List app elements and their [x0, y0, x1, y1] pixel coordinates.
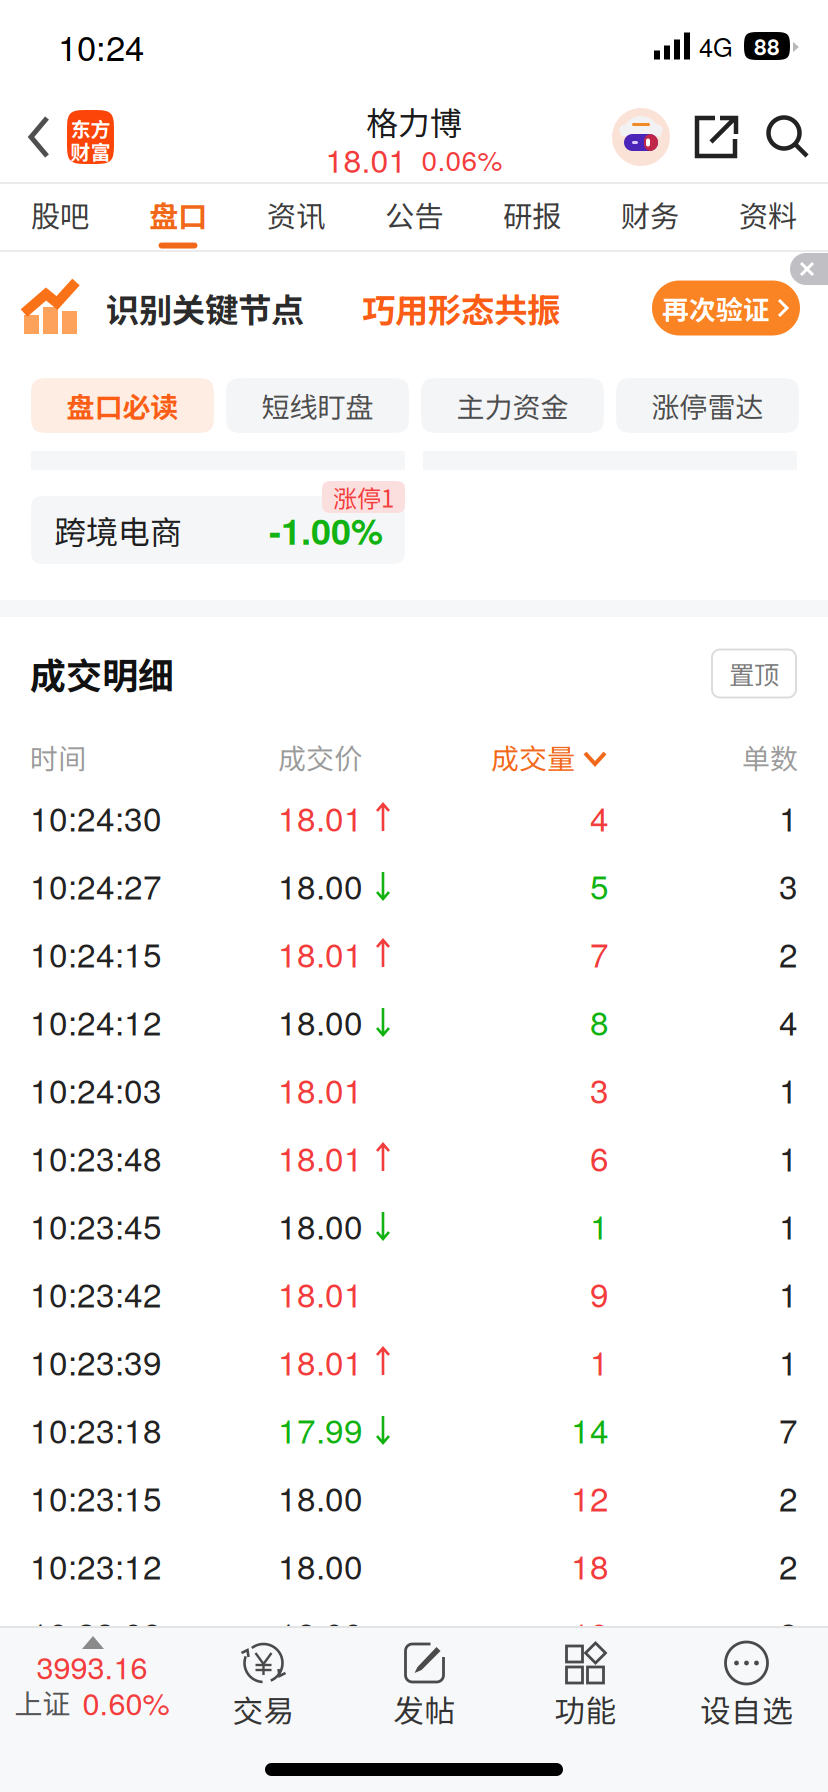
staticText: 10:24	[58, 21, 144, 71]
staticText: 18.00	[278, 1201, 363, 1249]
staticText: 4	[779, 997, 798, 1045]
button[interactable]: 发帖	[344, 1628, 505, 1736]
staticText: 2	[779, 1473, 798, 1521]
staticText: 3993.16	[36, 1644, 147, 1688]
staticText: 时间	[30, 737, 86, 777]
staticText: 18.01	[325, 136, 406, 182]
staticText: 10:23:18	[30, 1405, 162, 1453]
staticText: 再次验证	[662, 289, 770, 327]
staticText: 18.00	[278, 997, 363, 1045]
staticText: 格力博	[366, 98, 462, 144]
button[interactable]: 资料	[709, 182, 827, 251]
staticText: 18.01	[278, 1269, 363, 1317]
button[interactable]: Close	[790, 253, 828, 285]
button[interactable]: 涨停雷达	[616, 378, 799, 433]
staticText: 18.00	[278, 1541, 363, 1589]
staticText: 3	[779, 861, 798, 909]
button[interactable]: 交易	[183, 1628, 344, 1736]
staticText: 交易	[232, 1687, 294, 1731]
staticText: 10:24:12	[30, 997, 162, 1045]
staticText: 研报	[503, 193, 561, 236]
staticText: 10:23:12	[30, 1541, 162, 1589]
staticText: 18.00	[278, 1609, 363, 1657]
staticText: 10:23:45	[30, 1201, 162, 1249]
staticText: 上证	[14, 1682, 70, 1722]
button[interactable]: 股吧	[1, 182, 119, 251]
staticText: 18.01	[278, 929, 363, 977]
button[interactable]: 主力资金	[421, 378, 604, 433]
staticText: 0.60%	[82, 1680, 169, 1724]
button[interactable]: 功能	[505, 1628, 666, 1736]
button[interactable]: Share	[694, 115, 766, 159]
staticText: 10:23:42	[30, 1269, 162, 1317]
staticText: 18.00	[278, 1473, 363, 1521]
staticText: 10:23:48	[30, 1133, 162, 1181]
staticText: 4G	[699, 28, 733, 64]
staticText: 2	[779, 929, 798, 977]
staticText: 88	[754, 30, 780, 62]
button[interactable]: 短线盯盘	[226, 378, 409, 433]
staticText: 单数	[742, 737, 798, 777]
staticText: 主力资金	[456, 385, 568, 426]
staticText: 东方	[70, 113, 110, 142]
button[interactable]: 资讯	[237, 182, 355, 251]
staticText: 股吧	[31, 193, 89, 236]
staticText: 10:23:15	[30, 1473, 162, 1521]
button[interactable]: 再次验证	[652, 280, 800, 335]
button[interactable]: 财务	[591, 182, 709, 251]
staticText: 10:23:39	[30, 1337, 162, 1385]
button[interactable]: 研报	[473, 182, 591, 251]
staticText: 1	[590, 1201, 609, 1249]
staticText: 18.01	[278, 1065, 363, 1113]
staticText: 1	[779, 1337, 798, 1385]
staticText: 成交量	[491, 737, 575, 777]
button[interactable]: 设自选	[666, 1628, 827, 1736]
staticText: 17.99	[278, 1405, 363, 1453]
staticText: 置顶	[729, 655, 779, 692]
staticText: 10:24:15	[30, 929, 162, 977]
staticText: 成交价	[278, 737, 362, 777]
staticText: 财富	[70, 136, 110, 165]
button[interactable]: 盘口必读	[31, 378, 214, 433]
staticText: 短线盯盘	[261, 385, 373, 426]
staticText: 18.01	[278, 1337, 363, 1385]
staticText: 10	[571, 1609, 609, 1657]
staticText: 6	[590, 1133, 609, 1181]
staticText: 资料	[739, 193, 797, 236]
staticText: 3	[590, 1065, 609, 1113]
staticText: 盘口	[149, 193, 207, 236]
staticText: 资讯	[267, 193, 325, 236]
staticText: 18	[571, 1541, 609, 1589]
staticText: 发帖	[393, 1687, 455, 1731]
staticText: 成交明细	[30, 647, 174, 699]
staticText: 5	[590, 861, 609, 909]
staticText: 巧用形态共振	[362, 284, 560, 332]
staticText: 18.01	[278, 1133, 363, 1181]
staticText: 9	[590, 1269, 609, 1317]
staticText: 2	[779, 1541, 798, 1589]
staticText: 8	[590, 997, 609, 1045]
staticText: 1	[779, 793, 798, 841]
button[interactable]: 置顶	[712, 649, 796, 697]
button[interactable]: Search	[766, 115, 810, 159]
staticText: 10:23:09	[30, 1609, 162, 1657]
staticText: 10:24:27	[30, 861, 162, 909]
staticText: 4	[590, 793, 609, 841]
staticText: 7	[590, 929, 609, 977]
staticText: 14	[571, 1405, 609, 1453]
staticText: 12	[571, 1473, 609, 1521]
button[interactable]: 3993.16	[1, 1628, 183, 1736]
staticText: 识别关键节点	[106, 284, 304, 332]
staticText: 1	[779, 1269, 798, 1317]
staticText: 公告	[385, 193, 443, 236]
button[interactable]: 东方	[0, 92, 130, 182]
button[interactable]: 盘口	[119, 182, 237, 251]
button[interactable]: 公告	[355, 182, 473, 251]
staticText: 1	[779, 1065, 798, 1113]
staticText: 18.00	[278, 861, 363, 909]
staticText: 1	[590, 1337, 609, 1385]
staticText: 跨境电商	[54, 507, 182, 553]
button[interactable]: AI assistant	[612, 108, 694, 166]
button[interactable]: 跨境电商	[31, 496, 405, 564]
staticText: 功能	[554, 1687, 616, 1731]
